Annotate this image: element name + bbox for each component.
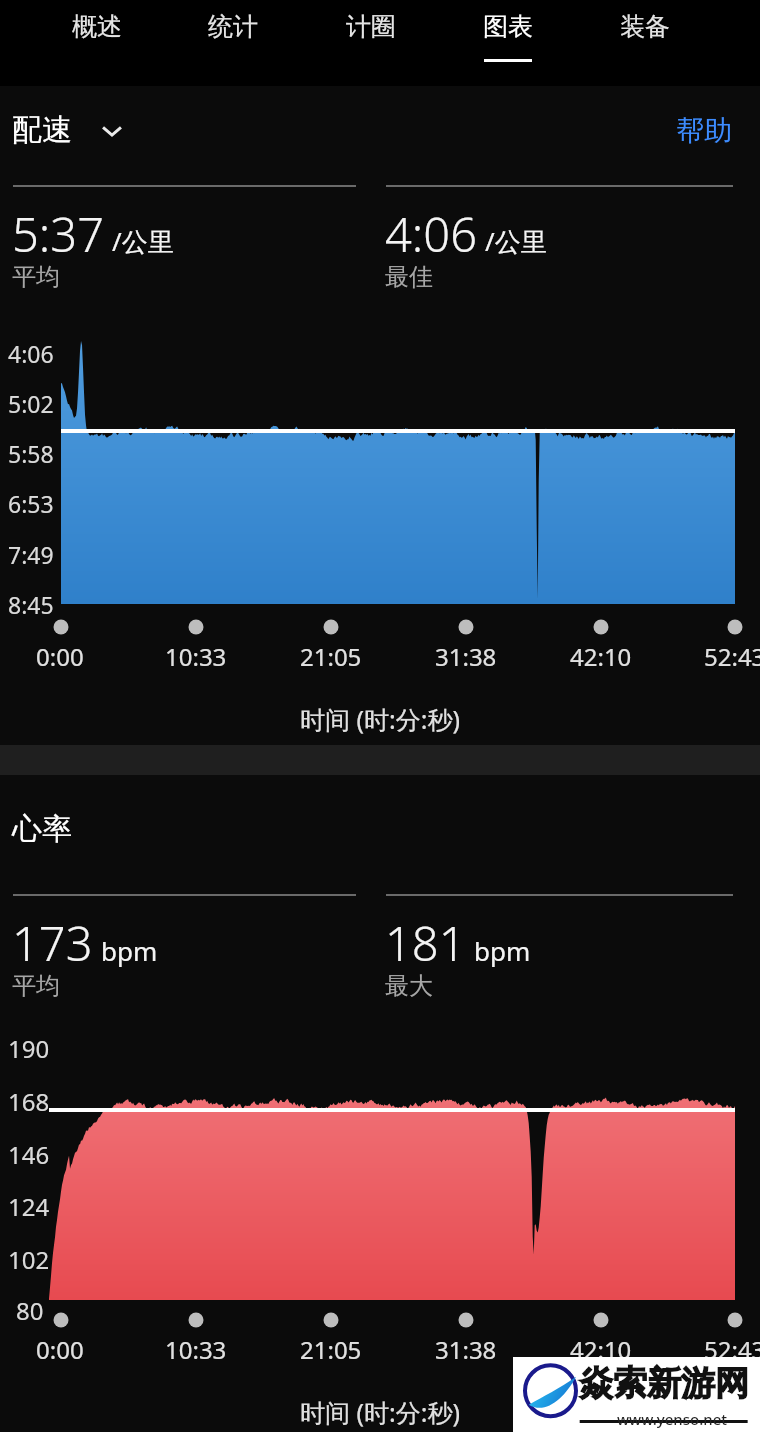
staticText: /公里 [485,223,547,259]
staticText: 31:38 [435,1333,497,1366]
staticText: 5:02 [8,388,54,419]
staticText: 最佳 [385,262,433,292]
staticText: 最大 [385,971,433,1001]
button[interactable]: 帮助 [660,104,748,156]
staticText: 10:33 [165,1333,227,1366]
staticText: 配速 [12,111,72,149]
button[interactable]: 配速 [12,104,128,156]
staticText: 173 [12,911,93,975]
staticText: 146 [8,1138,50,1171]
staticText: 统计 [208,11,258,42]
staticText: 平均 [12,971,60,1001]
staticText: 概述 [72,11,122,42]
staticText: 10:33 [165,640,227,673]
staticText: 装备 [620,11,670,42]
staticText: 心率 [12,810,72,848]
staticText: 焱索新游网 [579,1362,749,1405]
staticText: 帮助 [676,113,732,148]
staticText: 4:06 [385,202,477,266]
other: 选择图表 [96,114,128,146]
button[interactable]: 图表 [444,0,572,86]
staticText: 时间 (时:分:秒) [300,702,460,736]
staticText: 181 [385,911,466,975]
staticText: 0:00 [36,1333,84,1366]
button[interactable]: 计圈 [307,0,435,86]
staticText: 21:05 [300,640,362,673]
staticText: 6:53 [8,488,54,519]
staticText: bpm [474,933,531,968]
staticText: 计圈 [346,11,396,42]
staticText: 52:43 [704,1333,760,1366]
staticText: 平均 [12,262,60,292]
staticText: 7:49 [8,539,54,570]
staticText: 80 [16,1294,44,1327]
staticText: 图表 [483,11,533,42]
staticText: bpm [101,933,158,968]
staticText: 168 [8,1085,50,1118]
button[interactable]: 装备 [581,0,709,86]
staticText: 31:38 [435,640,497,673]
staticText: 102 [8,1243,50,1276]
staticText: 8:45 [8,589,54,620]
staticText: 时间 (时:分:秒) [300,1395,460,1429]
button[interactable]: 统计 [169,0,297,86]
staticText: 52:43 [704,640,760,673]
staticText: 0:00 [36,640,84,673]
staticText: 42:10 [570,640,632,673]
staticText: 4:06 [8,338,54,369]
staticText: 21:05 [300,1333,362,1366]
staticText: /公里 [112,223,174,259]
staticText: www.yenso.net [617,1409,728,1429]
staticText: 5:58 [8,438,54,469]
staticText: 124 [8,1190,50,1223]
button[interactable]: 概述 [33,0,161,86]
staticText: 190 [8,1032,50,1065]
staticText: 5:37 [12,202,104,266]
staticText: 42:10 [570,1333,632,1366]
